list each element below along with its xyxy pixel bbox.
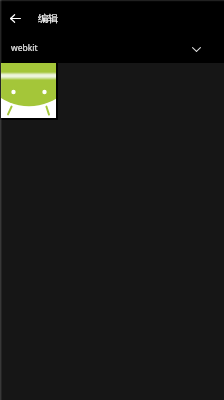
staticText: 编辑	[38, 12, 58, 25]
button[interactable]: webkit	[0, 36, 224, 63]
button[interactable]: Back	[0, 0, 30, 36]
button[interactable]: Expand	[184, 37, 208, 61]
button[interactable]: webkit thumbnail	[0, 63, 58, 120]
staticText: webkit	[11, 42, 38, 54]
